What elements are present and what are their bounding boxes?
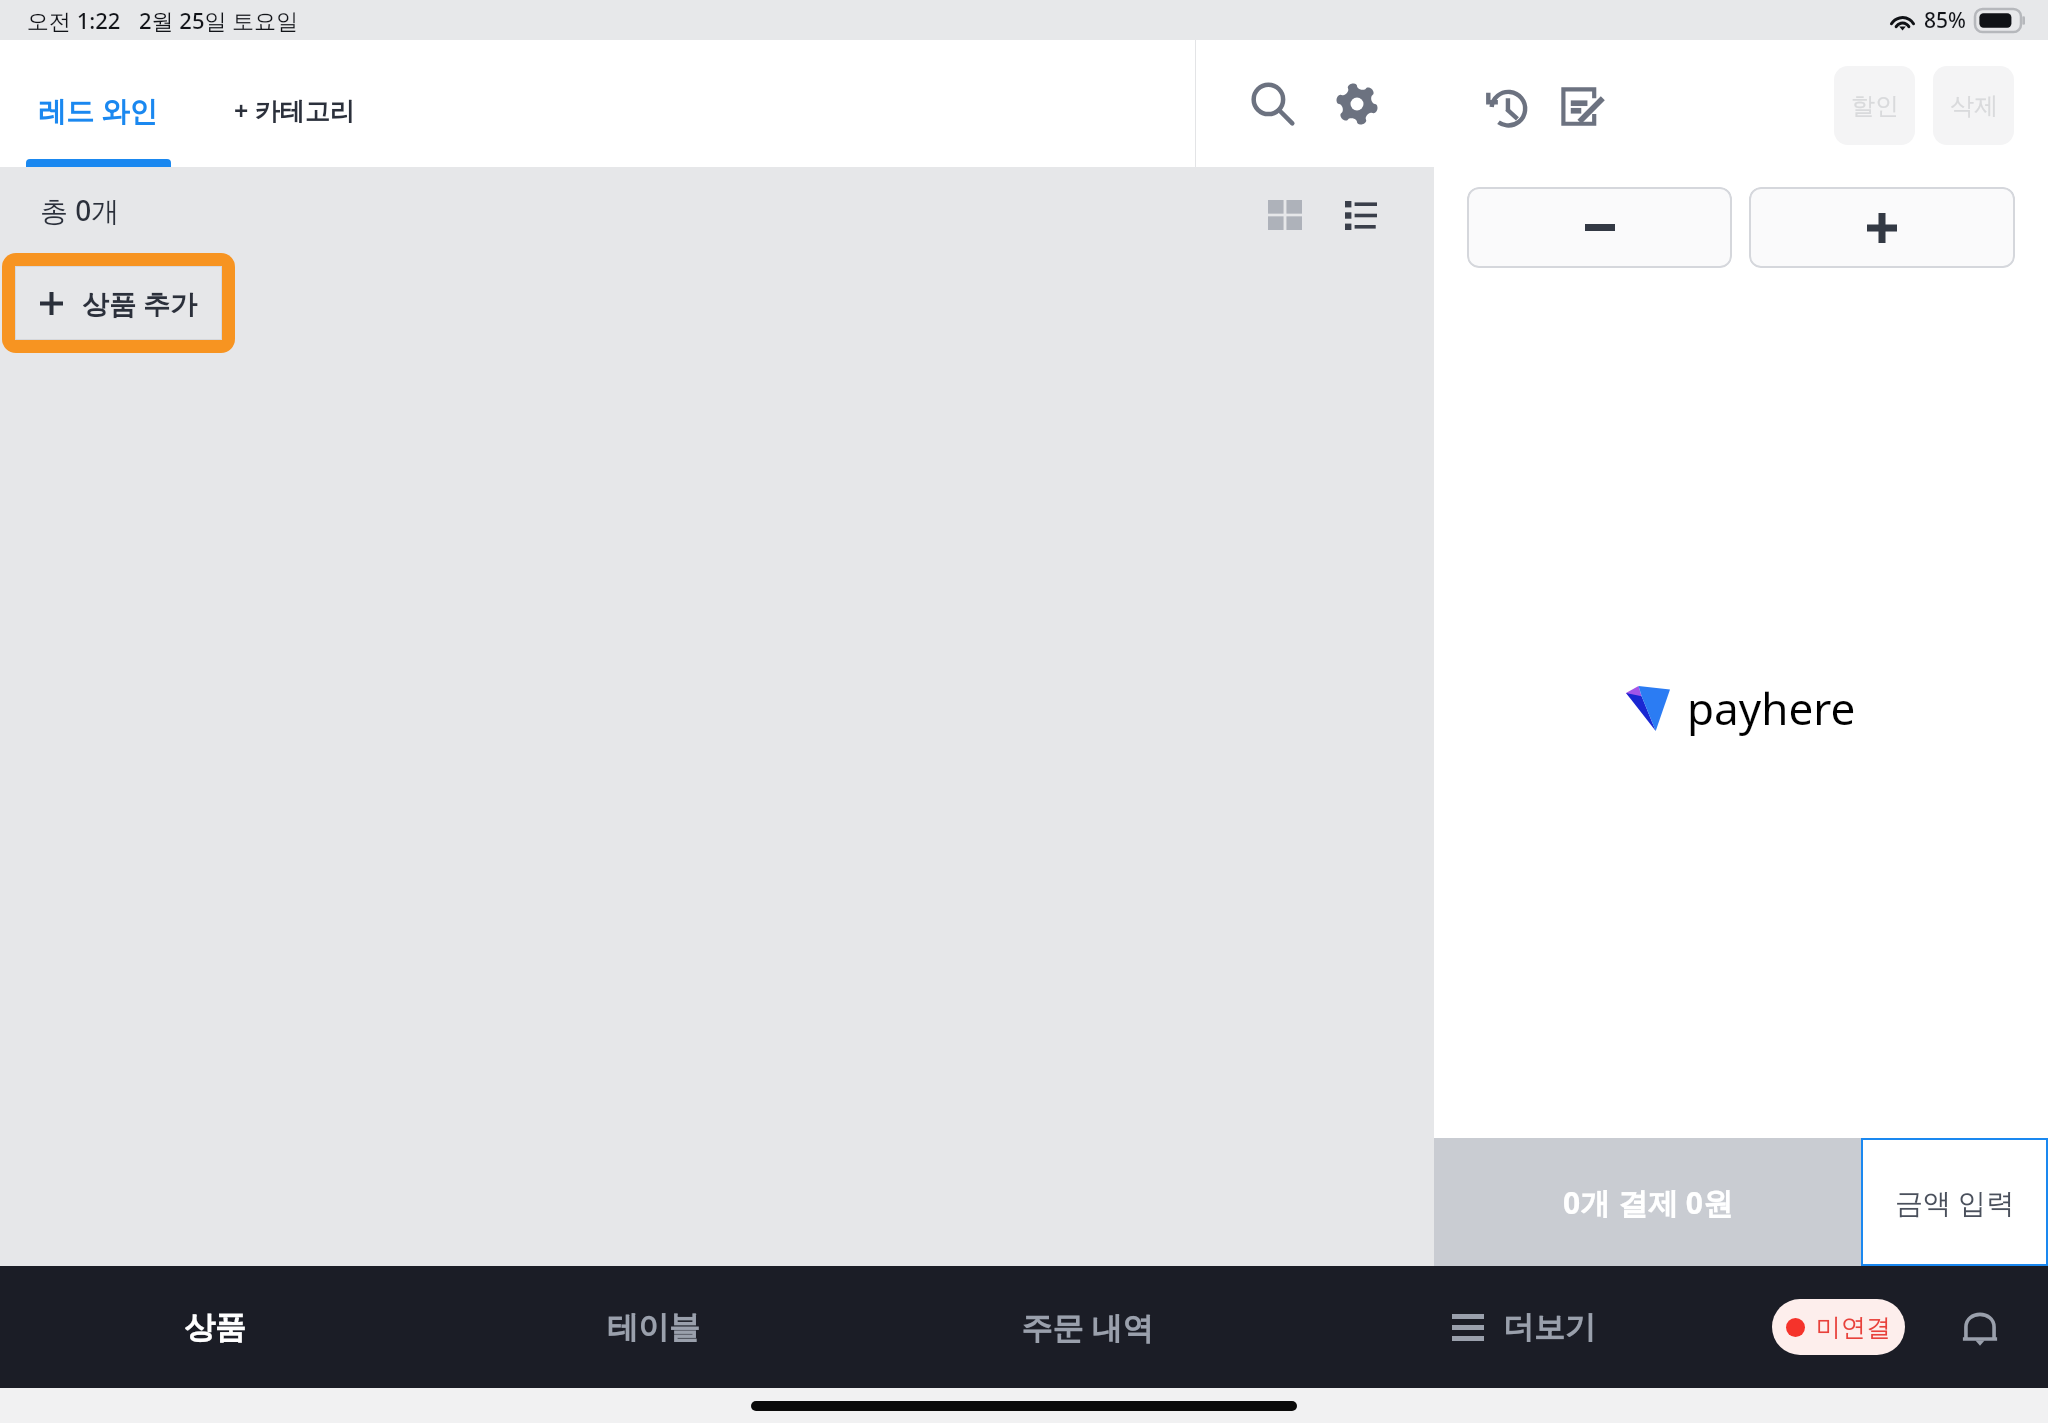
button[interactable]: Notifications [1948,1295,2012,1359]
staticText: 테이블 [607,1308,700,1347]
button[interactable]: 레드 와인 [0,40,1195,167]
staticText: 85% [1924,6,1966,35]
staticText: 더보기 [1503,1308,1596,1347]
staticText: 총 0개 [40,191,120,229]
staticText: 주문 내역 [1021,1306,1154,1348]
staticText: 삭제 [1950,91,1998,121]
button[interactable]: 주문 내역 [977,1266,1197,1388]
button[interactable]: 상품 추가 [15,266,222,340]
button[interactable]: 금액 입력 [1861,1138,2048,1266]
button[interactable]: 더보기 [1452,1266,1596,1388]
staticText: 금액 입력 [1895,1183,2015,1221]
button[interactable]: 미연결 [1772,1299,1905,1355]
staticText: + 카테고리 [234,93,355,127]
button[interactable]: 할인 [1834,66,1915,145]
button[interactable]: Settings [1318,65,1396,143]
staticText: 미연결 [1816,1312,1891,1343]
button[interactable]: Decrease [1467,187,1732,268]
staticText: 할인 [1851,91,1899,121]
staticText: 상품 추가 [82,285,198,322]
button[interactable]: Search [1234,65,1312,143]
button[interactable]: 0개 결제 0원 [1434,1138,1861,1266]
staticText: 상품 [184,1308,246,1347]
button[interactable]: 테이블 [543,1266,763,1388]
staticText: payhere [1687,678,1856,738]
button[interactable]: Increase [1749,187,2015,268]
staticText: 2월 25일 토요일 [139,5,299,35]
button[interactable]: 삭제 [1933,66,2014,145]
button[interactable]: History [1468,70,1542,144]
button[interactable]: 상품 [105,1266,325,1388]
button[interactable]: 레드 와인 [26,52,169,167]
button[interactable]: Memo [1544,70,1618,144]
button[interactable]: List view [1330,184,1392,246]
button[interactable]: + 카테고리 [219,52,369,167]
staticText: 오전 1:22 [27,5,121,35]
staticText: 레드 와인 [38,91,158,129]
button[interactable]: Grid view [1254,184,1316,246]
staticText: 0개 결제 0원 [1563,1182,1733,1223]
